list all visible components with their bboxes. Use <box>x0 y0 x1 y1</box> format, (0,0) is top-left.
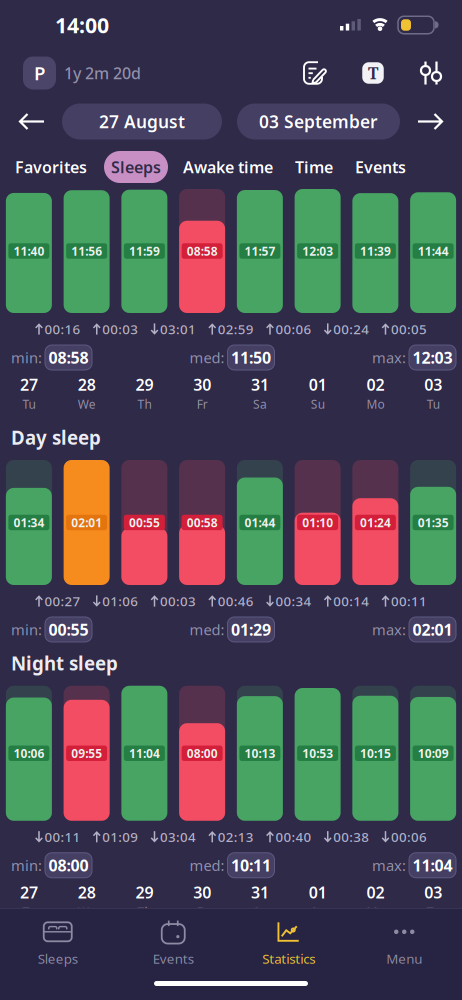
staticText: 08:00 <box>48 855 88 876</box>
staticText: 11:40 <box>13 243 44 259</box>
staticText: 11:04 <box>412 855 452 876</box>
staticText: 02:13 <box>218 828 254 846</box>
staticText: 00:40 <box>275 828 311 846</box>
staticText: 00:34 <box>275 592 311 610</box>
staticText: Events <box>153 950 194 967</box>
staticText: 30 <box>193 374 211 395</box>
staticText: 00:03 <box>160 592 196 610</box>
staticText: 11:59 <box>129 243 160 259</box>
staticText: 00:16 <box>44 320 80 338</box>
staticText: 28 <box>78 374 96 395</box>
staticText: max: <box>372 620 406 639</box>
staticText: Menu <box>386 950 422 967</box>
staticText: Fr <box>197 904 208 920</box>
button[interactable]: Events <box>115 920 231 967</box>
staticText: Su <box>311 904 325 920</box>
staticText: 00:06 <box>275 320 311 338</box>
staticText: 00:06 <box>391 828 427 846</box>
staticText: 00:11 <box>391 592 427 610</box>
staticText: 03 <box>424 374 442 395</box>
staticText: Mo <box>366 396 384 412</box>
staticText: 00:05 <box>391 320 427 338</box>
staticText: 02:01 <box>71 514 102 530</box>
staticText: 10:06 <box>13 745 44 761</box>
staticText: Tu <box>427 396 440 412</box>
staticText: min: <box>11 855 42 875</box>
staticText: 01 <box>309 882 327 903</box>
staticText: 27 <box>20 882 38 903</box>
staticText: Sleeps <box>38 950 78 967</box>
button[interactable]: Sleeps <box>104 151 168 183</box>
staticText: Awake time <box>183 156 273 178</box>
button[interactable]: Menu <box>346 920 462 967</box>
staticText: Fr <box>197 396 208 412</box>
button[interactable]: Events <box>355 156 406 178</box>
staticText: 01:10 <box>302 514 333 530</box>
staticText: Sleeps <box>111 156 161 178</box>
button[interactable]: Favorites <box>15 156 87 178</box>
staticText: 00:03 <box>102 320 138 338</box>
button[interactable]: Sleeps <box>0 920 115 967</box>
staticText: Th <box>137 396 151 412</box>
staticText: 1y 2m 20d <box>64 62 141 84</box>
staticText: 11:56 <box>71 243 102 259</box>
staticText: 00:55 <box>129 514 160 530</box>
staticText: 03 September <box>259 110 378 133</box>
staticText: 12:03 <box>412 347 452 368</box>
staticText: 00:38 <box>333 828 369 846</box>
button[interactable]: Time <box>295 156 333 178</box>
staticText: 02 <box>366 374 384 395</box>
button[interactable] <box>418 110 444 132</box>
staticText: 00:14 <box>333 592 369 610</box>
staticText: 03:01 <box>160 320 196 338</box>
staticText: We <box>78 904 96 920</box>
staticText: 27 <box>20 374 38 395</box>
staticText: 00:58 <box>187 514 218 530</box>
button[interactable]: T <box>356 62 390 84</box>
staticText: 28 <box>78 882 96 903</box>
staticText: 10:09 <box>418 745 449 761</box>
staticText: Tu <box>427 904 440 920</box>
staticText: Sa <box>253 904 267 920</box>
button[interactable]: Awake time <box>183 156 273 178</box>
button[interactable]: 27 August <box>62 103 222 139</box>
staticText: 11:44 <box>418 243 449 259</box>
staticText: 30 <box>193 882 211 903</box>
button[interactable] <box>18 110 44 132</box>
staticText: T <box>368 62 378 84</box>
staticText: min: <box>11 348 42 367</box>
staticText: 01:06 <box>102 592 138 610</box>
staticText: 10:53 <box>302 745 333 761</box>
staticText: 01 <box>309 374 327 395</box>
staticText: Tu <box>22 396 35 412</box>
staticText: min: <box>11 620 42 639</box>
staticText: 08:58 <box>48 347 88 368</box>
button[interactable] <box>298 61 332 85</box>
staticText: 00:46 <box>218 592 254 610</box>
staticText: 12:03 <box>302 243 333 259</box>
staticText: Th <box>137 904 151 920</box>
staticText: 10:11 <box>231 855 271 876</box>
staticText: Day sleep <box>11 425 101 450</box>
staticText: Su <box>311 396 325 412</box>
staticText: 29 <box>135 374 153 395</box>
staticText: 02 <box>366 882 384 903</box>
staticText: 00:24 <box>333 320 369 338</box>
button[interactable]: Statistics <box>231 920 346 967</box>
staticText: 01:44 <box>244 514 275 530</box>
button[interactable]: 03 September <box>237 103 400 139</box>
button[interactable]: P <box>23 56 56 89</box>
button[interactable] <box>414 61 448 84</box>
staticText: 03:04 <box>160 828 196 846</box>
staticText: max: <box>372 855 406 875</box>
staticText: 01:09 <box>102 828 138 846</box>
staticText: 31 <box>251 882 269 903</box>
staticText: 02:01 <box>412 619 452 640</box>
staticText: med: <box>189 855 224 875</box>
staticText: Sa <box>253 396 267 412</box>
staticText: 00:27 <box>44 592 80 610</box>
staticText: 00:55 <box>48 619 88 640</box>
staticText: med: <box>189 348 224 367</box>
staticText: Favorites <box>15 156 87 178</box>
staticText: 10:13 <box>244 745 275 761</box>
